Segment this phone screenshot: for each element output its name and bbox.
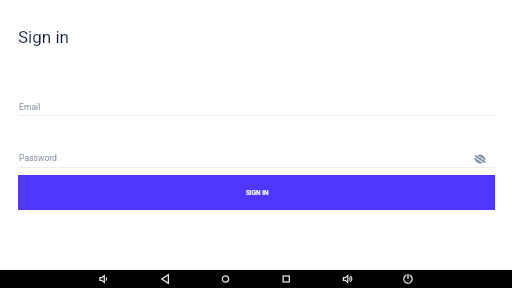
- button[interactable]: Power: [394, 270, 422, 288]
- button[interactable]: SIGN IN: [18, 175, 495, 210]
- button[interactable]: Email: [18, 100, 495, 116]
- button[interactable]: Recent apps: [272, 270, 300, 288]
- staticText: Email: [19, 102, 41, 112]
- staticText: Sign in: [18, 27, 69, 47]
- button[interactable]: Home: [212, 270, 240, 288]
- staticText: Password: [19, 153, 57, 163]
- staticText: SIGN IN: [246, 189, 269, 197]
- button[interactable]: Back: [151, 270, 179, 288]
- button[interactable]: Show password: [473, 152, 487, 166]
- button[interactable]: Volume down: [90, 270, 118, 288]
- button[interactable]: Password: [18, 152, 495, 168]
- button[interactable]: Volume up: [333, 270, 361, 288]
